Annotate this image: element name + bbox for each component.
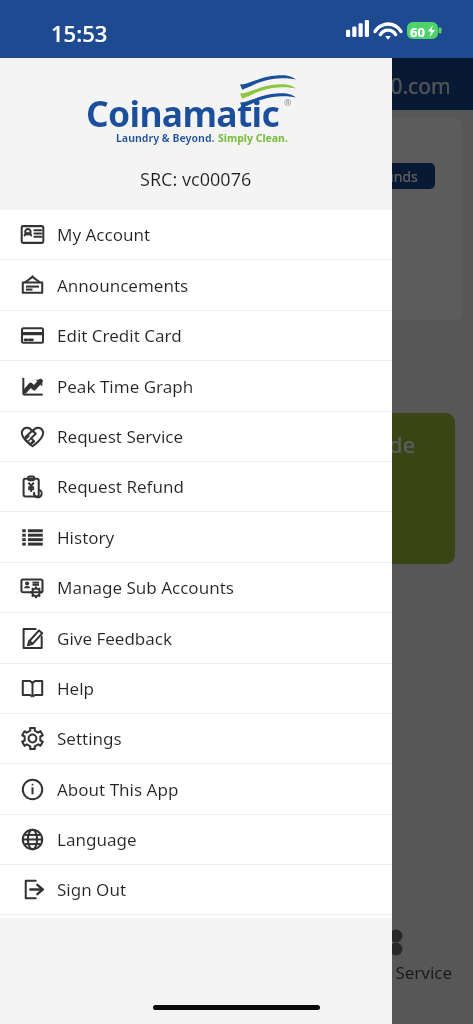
staticText: Coinamatic [86, 89, 280, 137]
staticText: Help [57, 677, 95, 700]
button[interactable]: Request Refund [0, 462, 392, 512]
staticText: History [57, 526, 115, 549]
staticText: 15:53 [51, 18, 108, 48]
staticText: ® [284, 96, 292, 108]
button[interactable]: Help [0, 664, 392, 714]
staticText: Give Feedback [57, 627, 173, 650]
staticText: Edit Credit Card [57, 324, 182, 347]
button[interactable]: Give Feedback [0, 613, 392, 664]
staticText: Add Funds [348, 167, 418, 186]
staticText: Manage Sub Accounts [57, 576, 234, 599]
staticText: Scan QR Code [290, 429, 416, 459]
button[interactable]: Announcements [0, 260, 392, 311]
button[interactable]: Request Service [0, 412, 392, 462]
staticText: Settings [57, 727, 122, 750]
button[interactable]: Settings [0, 714, 392, 764]
staticText: SRC: vc00076 [140, 167, 252, 192]
staticText: Announcements [57, 274, 189, 297]
button[interactable]: About This App [0, 764, 392, 815]
staticText: Language [57, 828, 137, 851]
staticText: Request Service [57, 425, 184, 448]
staticText: Laundry & Beyond. [116, 131, 218, 145]
button[interactable]: Manage Sub Accounts [0, 563, 392, 613]
button[interactable]: My Account [0, 210, 392, 260]
button[interactable]: Request Service [322, 929, 457, 984]
staticText: Request Service [326, 961, 453, 984]
staticText: Sign Out [57, 878, 127, 901]
button[interactable]: Edit Credit Card [0, 311, 392, 361]
staticText: About This App [57, 778, 179, 801]
button[interactable]: Peak Time Graph [0, 361, 392, 412]
button[interactable]: History [0, 512, 392, 563]
staticText: Request Refund [57, 475, 184, 498]
staticText: My Account [57, 223, 151, 246]
staticText: Peak Time Graph [57, 375, 194, 398]
staticText: laundry360.com [291, 72, 451, 101]
button[interactable]: Sign Out [0, 865, 392, 915]
button[interactable]: Language [0, 815, 392, 865]
staticText: 60 [410, 23, 425, 41]
staticText: Simply Clean. [218, 131, 288, 145]
